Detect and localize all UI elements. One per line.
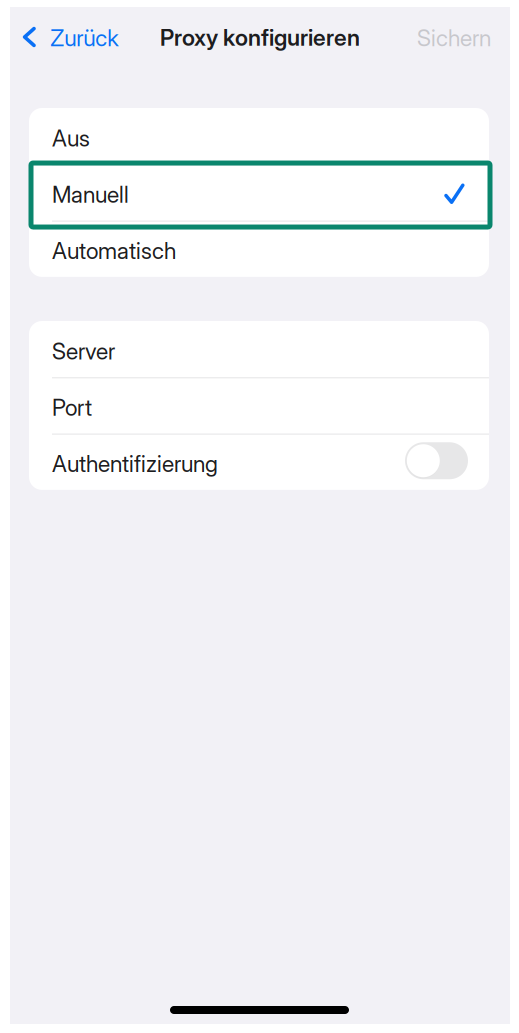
button[interactable]: Manuell	[29, 164, 489, 221]
button[interactable]: Authentifizierung einschalten	[405, 443, 468, 480]
button[interactable]: Automatisch	[29, 221, 489, 277]
staticText: Manuell	[52, 181, 129, 208]
staticText: Authentifizierung	[52, 450, 218, 477]
staticText: Automatisch	[52, 237, 176, 264]
button[interactable]: Aus	[29, 108, 489, 164]
button[interactable]: Zurück	[0, 16, 131, 60]
button[interactable]: Port	[29, 377, 489, 434]
staticText: Server	[52, 337, 115, 365]
staticText: Proxy konfigurieren	[160, 24, 360, 51]
staticText: Aus	[52, 124, 90, 152]
button[interactable]: Sichern	[403, 16, 505, 60]
staticText: Port	[52, 394, 92, 421]
staticText: Zurück	[50, 24, 119, 52]
staticText: Sichern	[417, 24, 491, 52]
button[interactable]: Server	[29, 321, 489, 377]
